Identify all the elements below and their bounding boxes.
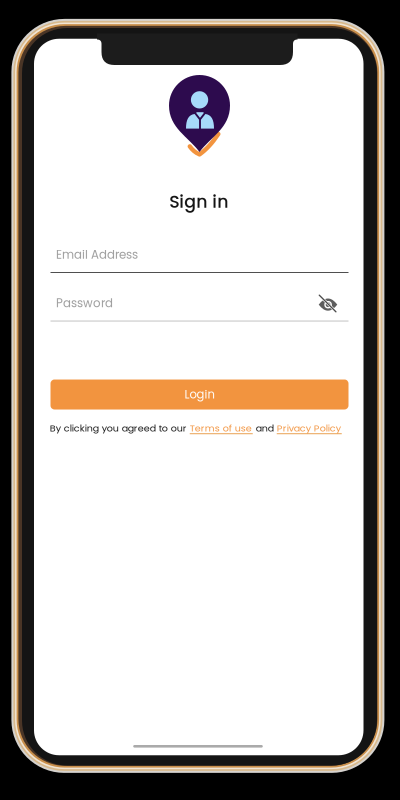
staticText: By clicking you agreed to our bbox=[50, 421, 190, 435]
staticText: Password bbox=[56, 295, 113, 311]
button[interactable]: Privacy Policy bbox=[277, 422, 342, 435]
button[interactable]: Terms of use bbox=[190, 422, 253, 435]
staticText: Terms of use bbox=[190, 421, 252, 435]
staticText: and bbox=[253, 421, 277, 435]
button[interactable]: Login bbox=[50, 379, 348, 409]
staticText: Privacy Policy bbox=[277, 421, 341, 435]
staticText: Email Address bbox=[56, 246, 138, 263]
button[interactable]: Show password bbox=[314, 292, 340, 316]
staticText: Sign in bbox=[169, 189, 228, 214]
staticText: Login bbox=[184, 386, 214, 403]
